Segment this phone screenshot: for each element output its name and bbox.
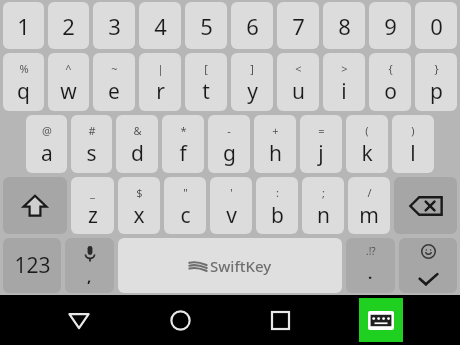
- staticText: s: [86, 139, 97, 168]
- staticText: /: [367, 185, 372, 200]
- button[interactable]: 7: [277, 2, 319, 49]
- button[interactable]: 8: [323, 2, 365, 49]
- button[interactable]: #: [71, 115, 112, 173]
- button[interactable]: ': [210, 177, 252, 234]
- staticText: ): [411, 123, 415, 138]
- button[interactable]: Backspace: [394, 177, 457, 234]
- staticText: l: [410, 139, 416, 168]
- staticText: ': [230, 185, 233, 200]
- staticText: .: [368, 263, 373, 283]
- button[interactable]: 2: [48, 2, 89, 49]
- staticText: u: [292, 77, 305, 106]
- staticText: .!?: [366, 244, 376, 258]
- staticText: +: [272, 123, 279, 138]
- button[interactable]: Enter: [399, 238, 457, 293]
- staticText: _: [90, 185, 95, 200]
- button[interactable]: &: [116, 115, 158, 173]
- button[interactable]: 3: [93, 2, 135, 49]
- staticText: h: [269, 139, 282, 168]
- button[interactable]: |: [139, 53, 181, 111]
- button[interactable]: {: [369, 53, 411, 111]
- button[interactable]: 5: [185, 2, 227, 49]
- staticText: m: [359, 201, 379, 230]
- button[interactable]: ;: [302, 177, 344, 234]
- staticText: 0: [430, 11, 443, 41]
- button[interactable]: *: [162, 115, 204, 173]
- button[interactable]: <: [277, 53, 319, 111]
- button[interactable]: 1: [3, 2, 44, 49]
- staticText: j: [318, 139, 324, 168]
- button[interactable]: 123: [3, 238, 61, 293]
- staticText: (: [365, 123, 369, 138]
- staticText: k: [361, 139, 373, 168]
- staticText: <: [295, 61, 302, 76]
- button[interactable]: ~: [93, 53, 135, 111]
- staticText: a: [41, 139, 53, 168]
- staticText: [: [204, 61, 208, 76]
- button[interactable]: Switch keyboard: [359, 298, 403, 342]
- button[interactable]: /: [348, 177, 390, 234]
- button[interactable]: 6: [231, 2, 273, 49]
- button[interactable]: >: [323, 53, 365, 111]
- staticText: o: [384, 77, 397, 106]
- staticText: 5: [200, 11, 213, 41]
- button[interactable]: 0: [415, 2, 457, 49]
- staticText: w: [60, 77, 77, 106]
- button[interactable]: -: [208, 115, 250, 173]
- staticText: ^: [65, 61, 72, 76]
- button[interactable]: =: [300, 115, 342, 173]
- button[interactable]: ): [392, 115, 434, 173]
- button[interactable]: 4: [139, 2, 181, 49]
- button[interactable]: :: [256, 177, 298, 234]
- staticText: {: [388, 61, 393, 76]
- button[interactable]: ": [164, 177, 206, 234]
- staticText: 4: [154, 11, 167, 41]
- button[interactable]: [: [185, 53, 227, 111]
- staticText: 9: [384, 11, 397, 41]
- button[interactable]: Recent apps: [258, 298, 302, 342]
- staticText: v: [226, 201, 237, 230]
- staticText: x: [133, 201, 145, 230]
- staticText: b: [271, 201, 284, 230]
- button[interactable]: +: [254, 115, 296, 173]
- staticText: t: [202, 77, 210, 106]
- staticText: #: [88, 123, 96, 138]
- button[interactable]: ]: [231, 53, 273, 111]
- staticText: *: [180, 123, 187, 138]
- staticText: $: [136, 185, 143, 200]
- button[interactable]: }: [415, 53, 457, 111]
- button[interactable]: Back: [57, 298, 101, 342]
- staticText: q: [17, 77, 30, 106]
- button[interactable]: Shift: [3, 177, 67, 234]
- staticText: e: [108, 77, 120, 106]
- button[interactable]: _: [71, 177, 114, 234]
- staticText: SwiftKey: [210, 256, 272, 276]
- staticText: z: [88, 201, 98, 230]
- staticText: r: [156, 77, 165, 106]
- button[interactable]: Voice input: [65, 238, 114, 293]
- staticText: 8: [338, 11, 351, 41]
- button[interactable]: $: [118, 177, 160, 234]
- button[interactable]: Space: [118, 238, 342, 293]
- button[interactable]: 9: [369, 2, 411, 49]
- staticText: 6: [246, 11, 259, 41]
- staticText: i: [341, 77, 347, 106]
- staticText: 1: [17, 11, 30, 41]
- staticText: &: [133, 123, 142, 138]
- button[interactable]: Home: [158, 298, 202, 342]
- button[interactable]: (: [346, 115, 388, 173]
- staticText: y: [247, 77, 258, 106]
- button[interactable]: Period: [346, 238, 395, 293]
- staticText: =: [318, 123, 325, 138]
- staticText: g: [223, 139, 236, 168]
- staticText: ]: [250, 61, 254, 76]
- staticText: 123: [14, 251, 51, 280]
- button[interactable]: ^: [48, 53, 89, 111]
- button[interactable]: %: [3, 53, 44, 111]
- button[interactable]: @: [26, 115, 67, 173]
- staticText: 7: [292, 11, 305, 41]
- staticText: f: [179, 139, 187, 168]
- staticText: c: [180, 201, 191, 230]
- staticText: ": [183, 185, 188, 200]
- staticText: |: [157, 61, 164, 76]
